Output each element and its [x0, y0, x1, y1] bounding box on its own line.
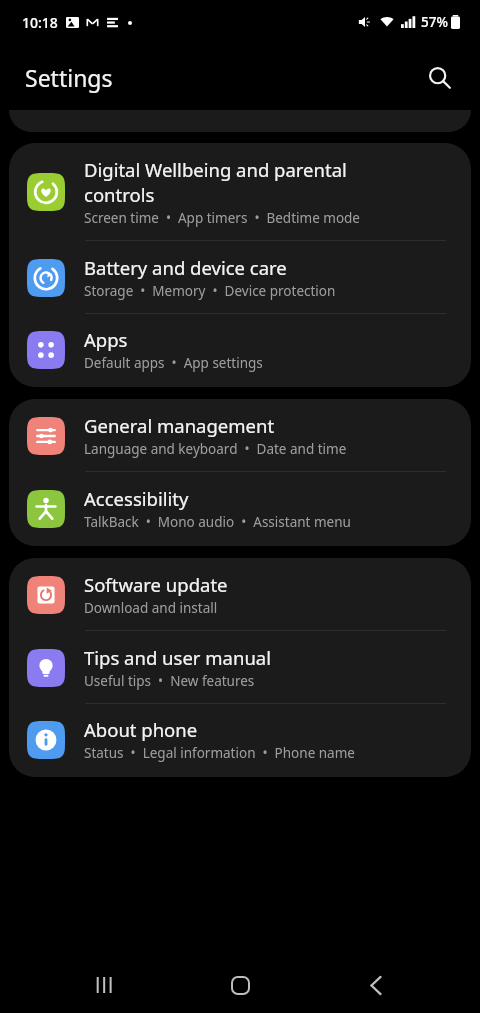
staticText: Useful tips • New features [84, 672, 255, 690]
staticText: TalkBack • Mono audio • Assistant menu [84, 513, 351, 531]
button[interactable]: Battery and device care [9, 241, 471, 313]
staticText: About phone [84, 717, 198, 742]
staticText: Battery and device care [84, 255, 287, 280]
staticText: Settings [25, 62, 113, 93]
button[interactable]: Software update [9, 558, 471, 630]
staticText: 57% [421, 13, 448, 31]
button[interactable]: About phone [9, 704, 471, 777]
staticText: Tips and user manual [84, 645, 271, 670]
staticText: Software update [84, 572, 228, 597]
button[interactable]: General management [9, 399, 471, 471]
staticText: Digital Wellbeing and parental controls [84, 157, 347, 207]
button[interactable]: Recent apps [72, 957, 136, 1013]
staticText: Apps [84, 327, 128, 352]
staticText: Storage • Memory • Device protection [84, 282, 336, 300]
staticText: Screen time • App timers • Bedtime mode [84, 209, 360, 227]
staticText: Default apps • App settings [84, 354, 263, 372]
button[interactable]: Apps [9, 314, 471, 387]
staticText: 10:18 [22, 13, 58, 32]
staticText: Accessibility [84, 486, 189, 511]
staticText: Language and keyboard • Date and time [84, 440, 347, 458]
staticText: Download and install [84, 599, 218, 617]
button[interactable]: Back [344, 957, 408, 1013]
button[interactable]: Digital Wellbeing and parental controls [9, 143, 471, 240]
button[interactable]: Home [208, 957, 272, 1013]
staticText: General management [84, 413, 275, 438]
staticText: Status • Legal information • Phone name [84, 744, 355, 762]
button[interactable]: Tips and user manual [9, 631, 471, 703]
button[interactable]: Accessibility [9, 472, 471, 546]
button[interactable] [9, 110, 471, 132]
button[interactable]: Search [416, 54, 462, 100]
